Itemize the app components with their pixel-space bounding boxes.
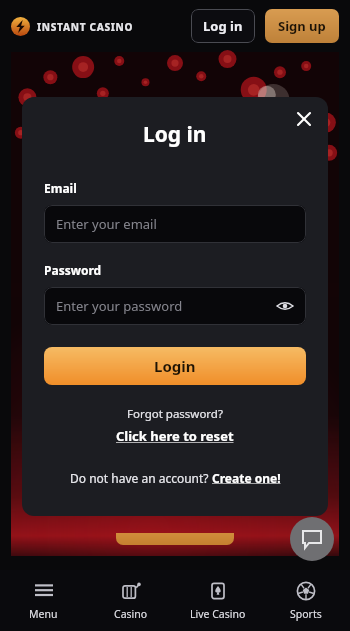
button[interactable]: Menu [0,570,87,631]
staticText: Sports [290,607,322,621]
button[interactable]: INSTANT CASINO [11,17,134,36]
button[interactable]: Create one! [212,470,281,486]
button[interactable]: Enter your email [44,205,306,243]
staticText: Log in [203,17,243,35]
button[interactable]: Click here to reset [116,427,234,445]
button[interactable]: Casino [87,570,174,631]
staticText: Enter your email [56,215,157,233]
button[interactable]: Log in [191,9,255,43]
staticText: Log in [143,120,207,149]
staticText: Email [44,180,77,196]
staticText: Do not have an account? [70,470,212,486]
staticText: INSTANT CASINO [37,20,134,34]
staticText: Forgot password? [44,406,306,422]
staticText: Live Casino [190,607,246,621]
staticText: Password [44,262,102,278]
staticText: Sign up [278,17,326,35]
staticText: Casino [114,607,148,621]
button[interactable]: Login [44,347,306,385]
staticText: Menu [29,607,58,621]
button[interactable]: Live Casino [174,570,262,631]
button[interactable]: Enter your password [44,287,306,325]
button[interactable]: Sign up [265,9,339,43]
button[interactable]: Support chat [290,517,334,561]
button[interactable]: Close [288,103,320,135]
button[interactable]: Show password [272,293,298,319]
staticText: Login [154,356,196,376]
staticText: Enter your password [56,297,183,315]
button[interactable]: Sports [262,570,350,631]
